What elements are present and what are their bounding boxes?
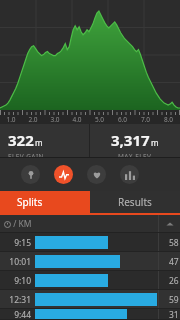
button[interactable]: Splits	[0, 191, 90, 213]
staticText: MAX ELEV	[118, 152, 152, 157]
staticText: 7.0	[134, 115, 157, 124]
staticText: 8.0	[157, 115, 180, 124]
staticText: 59	[169, 294, 179, 306]
staticText: m	[151, 137, 159, 148]
staticText: 5.0	[88, 115, 111, 124]
staticText: 10:01	[0, 256, 31, 268]
staticText: / KM	[11, 218, 32, 230]
staticText: 12:31	[0, 294, 31, 306]
staticText: 26	[169, 275, 179, 287]
button[interactable]: 9:44	[0, 309, 180, 320]
staticText: Splits	[17, 195, 43, 209]
button[interactable]: Results	[90, 191, 180, 213]
button[interactable]: 3,317	[90, 124, 180, 157]
staticText: 6.0	[111, 115, 134, 124]
button[interactable]: Splits chart	[120, 165, 139, 184]
staticText: m	[35, 137, 43, 148]
button[interactable]: 322	[0, 124, 89, 157]
staticText: 2.0	[22, 115, 44, 124]
staticText: 9:44	[0, 309, 31, 320]
button[interactable]: Heart rate	[87, 165, 106, 184]
button[interactable]: Activity graph	[54, 165, 73, 184]
staticText: 4.0	[66, 115, 88, 124]
staticText: 322	[8, 130, 34, 150]
button[interactable]: 9:10	[0, 271, 180, 290]
staticText: 3,317	[111, 130, 150, 150]
button[interactable]: Location	[21, 165, 40, 184]
staticText: Results	[118, 195, 152, 209]
staticText: ELEV GAIN	[8, 152, 44, 157]
button[interactable]: 9:15	[0, 233, 180, 252]
staticText: 47	[169, 256, 179, 268]
staticText: 1.0	[0, 115, 22, 124]
staticText: 58	[169, 237, 179, 249]
staticText: 9:15	[0, 237, 31, 249]
staticText: 9:10	[0, 275, 31, 287]
staticText: 31	[169, 309, 179, 320]
button[interactable]: 10:01	[0, 252, 180, 271]
button[interactable]: 12:31	[0, 290, 180, 309]
staticText: 3.0	[44, 115, 66, 124]
